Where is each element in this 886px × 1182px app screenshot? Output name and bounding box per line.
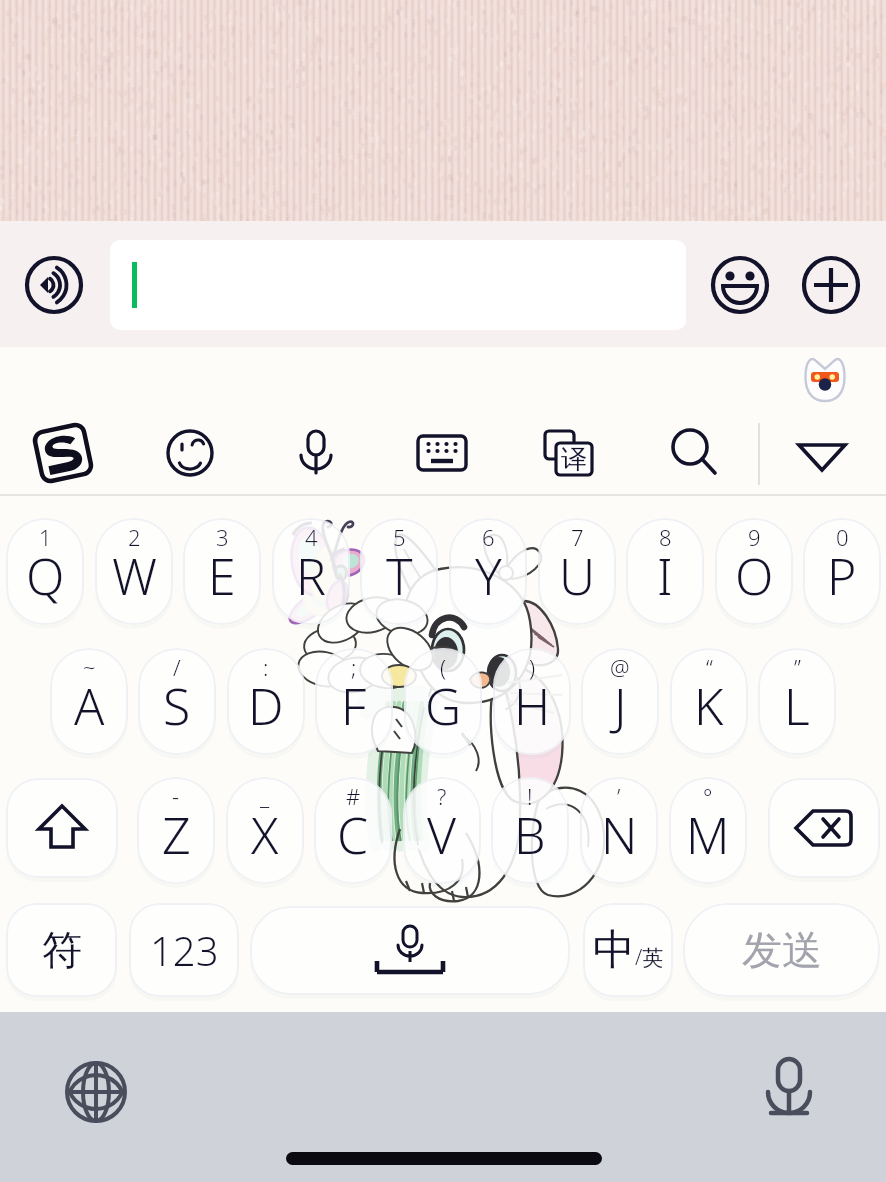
staticText: I: [657, 542, 673, 610]
staticText: Q: [26, 542, 65, 610]
button[interactable]: Search: [653, 411, 737, 495]
staticText: ~: [83, 652, 96, 682]
button[interactable]: (: [404, 648, 482, 755]
staticText: L: [784, 672, 810, 740]
button[interactable]: ;: [315, 648, 393, 755]
button[interactable]: /: [138, 648, 216, 755]
staticText: C: [337, 801, 369, 869]
staticText: 0: [836, 522, 849, 552]
staticText: B: [514, 801, 546, 869]
staticText: @: [610, 652, 630, 682]
button[interactable]: 3: [183, 518, 261, 625]
button[interactable]: Translate: [527, 411, 611, 495]
button[interactable]: “: [670, 648, 748, 755]
staticText: 中: [593, 924, 635, 977]
staticText: 9: [748, 522, 761, 552]
staticText: 7: [571, 522, 584, 552]
button[interactable]: More: [802, 256, 860, 314]
staticText: P: [827, 542, 857, 610]
button[interactable]: Hide keyboard: [780, 411, 864, 495]
staticText: O: [735, 542, 774, 610]
staticText: :: [263, 652, 269, 682]
staticText: _: [260, 781, 270, 811]
button[interactable]: :: [227, 648, 305, 755]
staticText: 6: [482, 522, 495, 552]
button[interactable]: ): [493, 648, 571, 755]
staticText: E: [208, 542, 236, 610]
button[interactable]: Chinese English toggle: [583, 903, 673, 997]
button[interactable]: Voice input: [274, 411, 358, 495]
button[interactable]: Space: [250, 906, 570, 995]
button[interactable]: 发送: [683, 903, 880, 997]
staticText: 2: [128, 522, 141, 552]
staticText: 符: [42, 925, 82, 975]
button[interactable]: Microphone: [755, 1055, 823, 1123]
button[interactable]: 1: [6, 518, 84, 625]
button[interactable]: ~: [50, 648, 128, 755]
button[interactable]: Voice input: [25, 256, 83, 314]
button[interactable]: Emoji: [711, 256, 769, 314]
staticText: W: [112, 542, 157, 610]
button[interactable]: 5: [360, 518, 438, 625]
staticText: -: [172, 781, 180, 811]
staticText: !: [527, 781, 533, 811]
button[interactable]: 0: [803, 518, 881, 625]
button[interactable]: 4: [272, 518, 350, 625]
button[interactable]: 123: [129, 903, 239, 997]
staticText: ?: [437, 781, 447, 811]
staticText: 5: [393, 522, 406, 552]
staticText: 4: [305, 522, 318, 552]
staticText: K: [694, 672, 724, 740]
button[interactable]: 8: [626, 518, 704, 625]
button[interactable]: 符: [6, 903, 117, 997]
staticText: Y: [475, 542, 502, 610]
staticText: H: [514, 672, 551, 740]
button[interactable]: Backspace: [768, 778, 880, 878]
staticText: “: [706, 652, 713, 682]
button[interactable]: ’: [580, 777, 658, 884]
button[interactable]: Switch input language: [62, 1058, 130, 1126]
button[interactable]: Message input field: [110, 240, 686, 330]
button[interactable]: -: [137, 777, 215, 884]
button[interactable]: 6: [449, 518, 527, 625]
staticText: ;: [351, 652, 357, 682]
button[interactable]: Theme avatar: [800, 353, 850, 403]
staticText: N: [601, 801, 638, 869]
button[interactable]: 7: [538, 518, 616, 625]
staticText: ’: [617, 781, 621, 811]
staticText: 3: [216, 522, 229, 552]
staticText: /英: [635, 943, 664, 972]
staticText: 123: [150, 923, 219, 977]
button[interactable]: Keyboard layout: [400, 411, 484, 495]
staticText: 译: [561, 443, 587, 476]
staticText: #: [346, 781, 361, 811]
staticText: V: [427, 801, 457, 869]
button[interactable]: Sogou logo: [21, 411, 105, 495]
staticText: X: [251, 801, 279, 869]
staticText: 8: [659, 522, 672, 552]
staticText: T: [386, 542, 413, 610]
staticText: /: [173, 652, 181, 682]
staticText: 1: [39, 522, 52, 552]
button[interactable]: ”: [758, 648, 836, 755]
staticText: A: [74, 672, 105, 740]
staticText: Z: [162, 801, 191, 869]
button[interactable]: _: [226, 777, 304, 884]
staticText: ): [529, 652, 536, 682]
button[interactable]: #: [314, 777, 392, 884]
button[interactable]: Shift: [6, 778, 118, 878]
staticText: U: [559, 542, 596, 610]
staticText: ”: [794, 652, 801, 682]
staticText: D: [248, 672, 284, 740]
staticText: G: [425, 672, 462, 740]
button[interactable]: @: [581, 648, 659, 755]
staticText: (: [440, 652, 447, 682]
button[interactable]: 2: [95, 518, 173, 625]
staticText: °: [703, 781, 713, 811]
button[interactable]: !: [491, 777, 569, 884]
button[interactable]: 9: [715, 518, 793, 625]
staticText: J: [614, 672, 627, 740]
button[interactable]: °: [669, 777, 747, 884]
button[interactable]: ?: [403, 777, 481, 884]
button[interactable]: Emoticons: [148, 411, 232, 495]
